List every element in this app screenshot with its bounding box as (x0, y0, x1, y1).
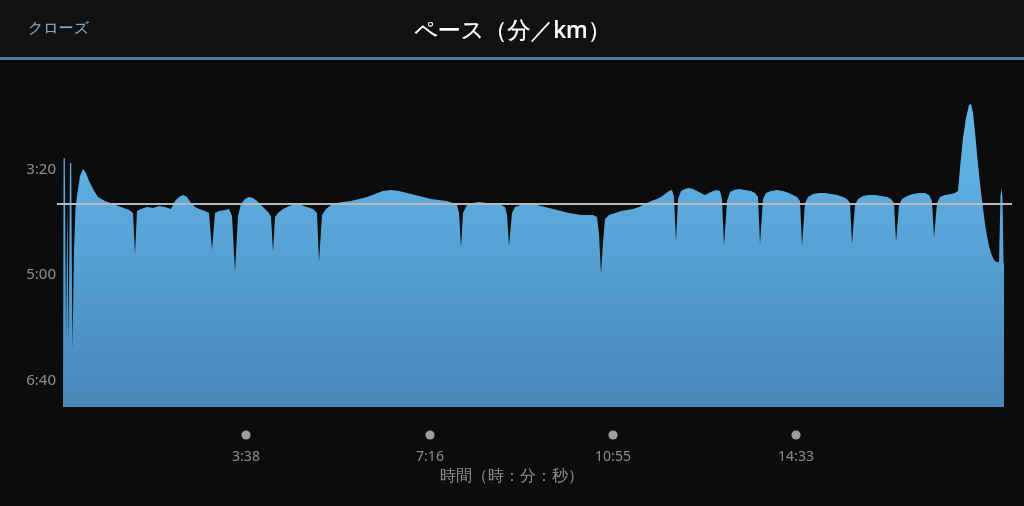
staticText: 10:55 (595, 446, 631, 465)
staticText: 14:33 (778, 446, 814, 465)
other: ペースグラフ (0, 0, 1024, 506)
staticText: 3:38 (232, 446, 260, 465)
staticText: 時間（時：分：秒） (440, 466, 584, 486)
staticText: 7:16 (416, 446, 444, 465)
button[interactable]: クローズ (18, 11, 100, 46)
staticText: 3:20 (26, 158, 56, 178)
staticText: クローズ (28, 19, 90, 38)
staticText: 6:40 (26, 369, 56, 389)
staticText: ペース（分／km） (414, 13, 611, 44)
staticText: 5:00 (26, 263, 56, 283)
